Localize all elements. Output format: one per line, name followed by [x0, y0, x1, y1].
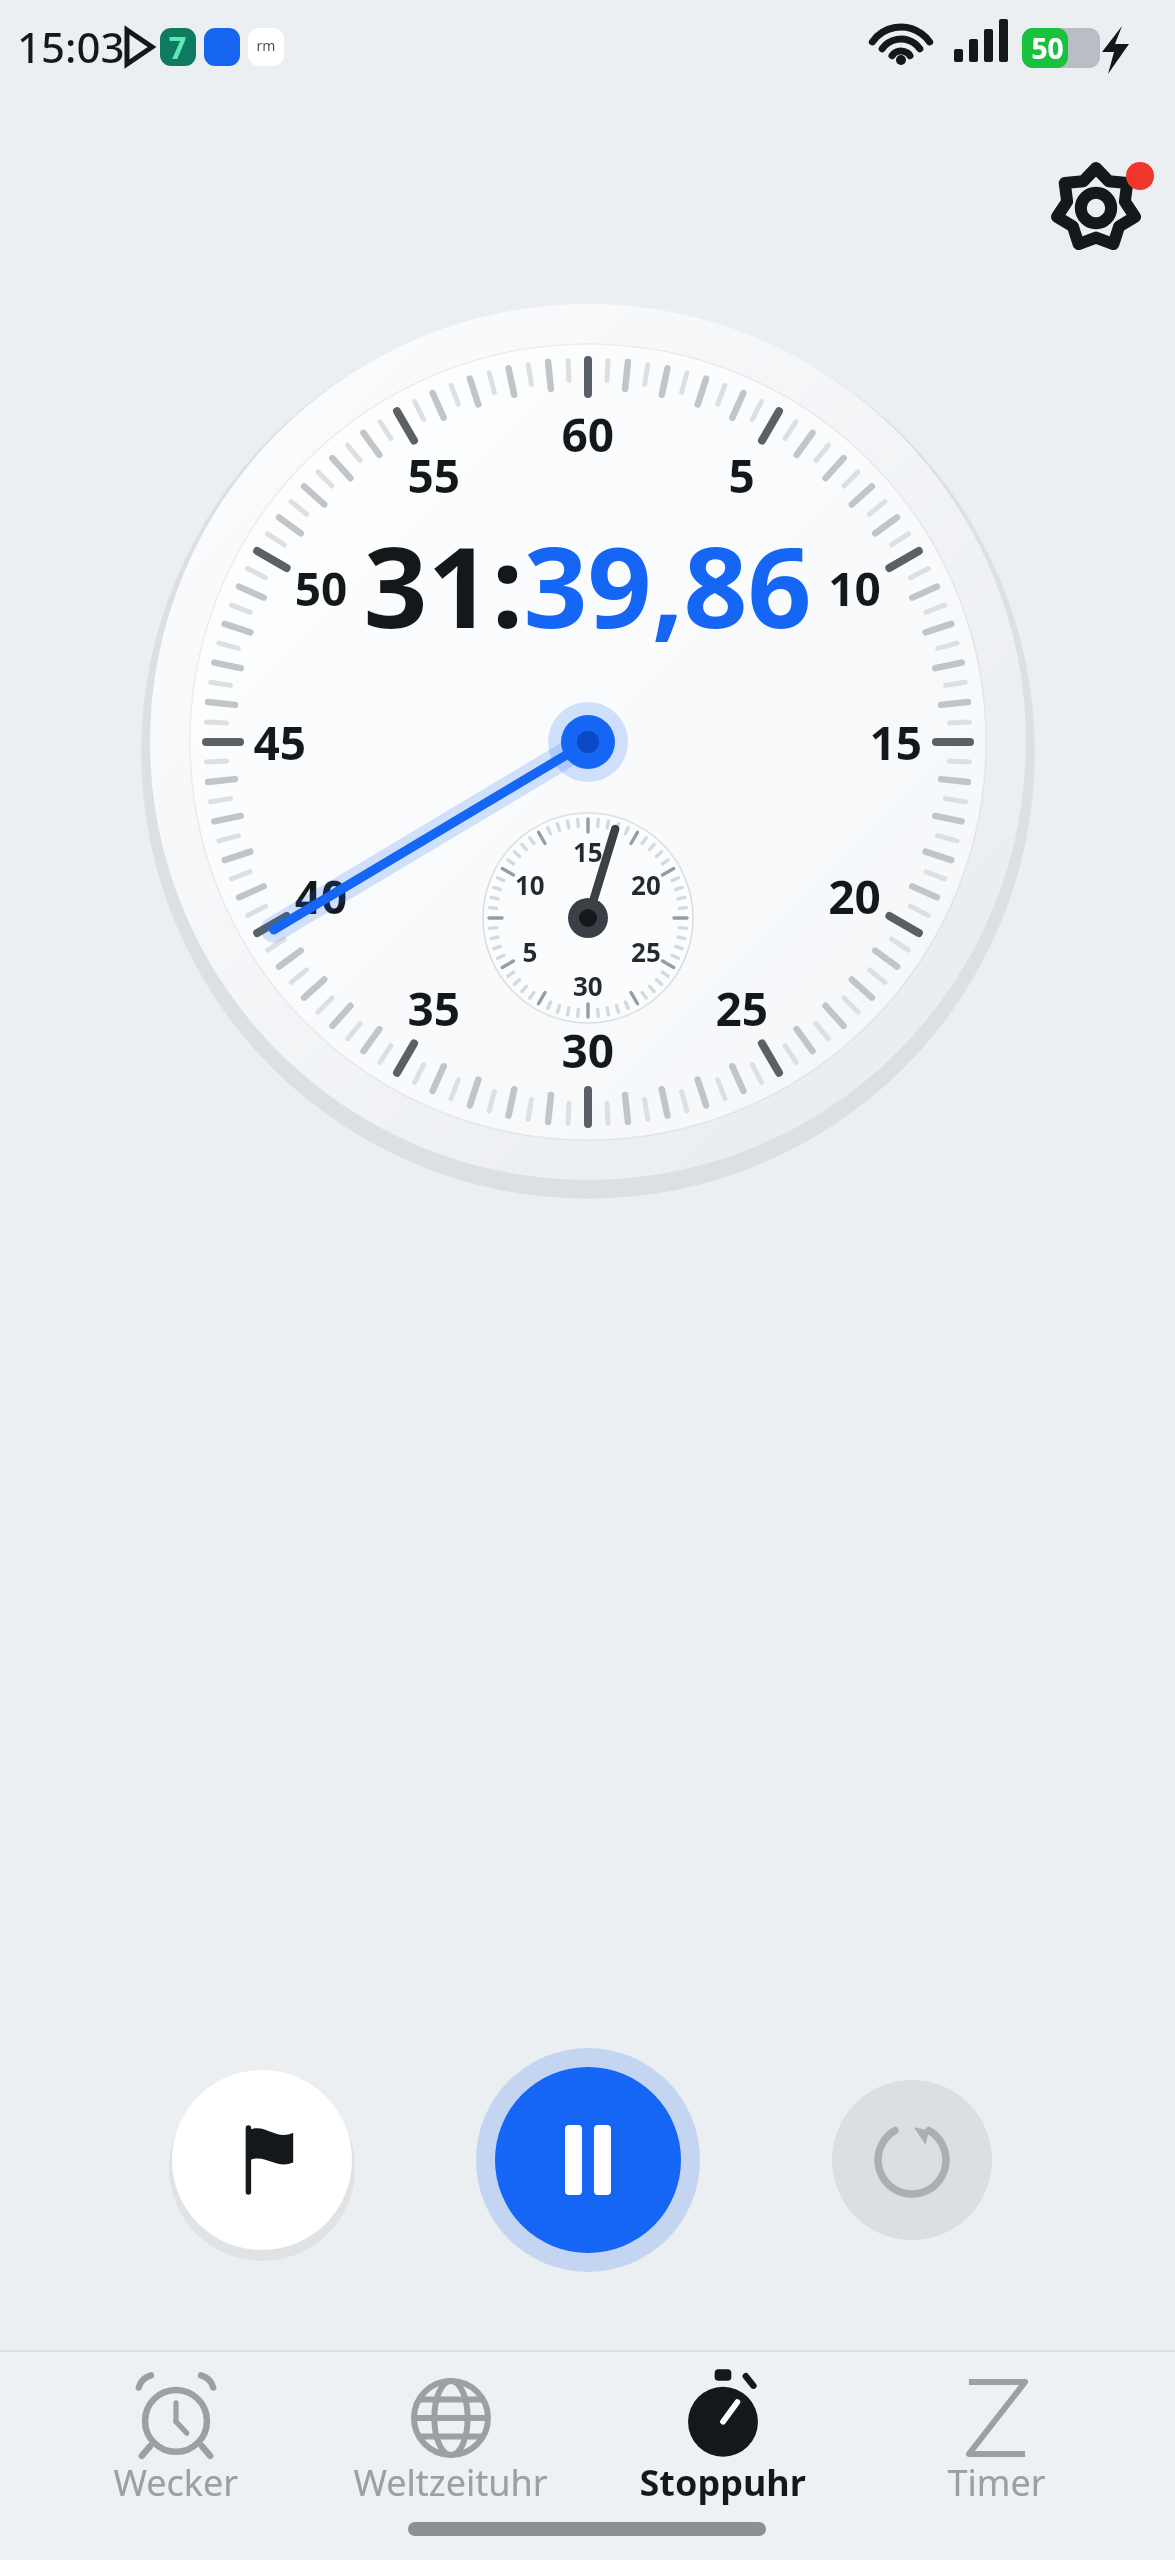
- button[interactable]: [202, 796, 292, 856]
- button[interactable]: [292, 796, 382, 856]
- button[interactable]: Pause: [165, 657, 227, 719]
- button[interactable]: [110, 796, 200, 856]
